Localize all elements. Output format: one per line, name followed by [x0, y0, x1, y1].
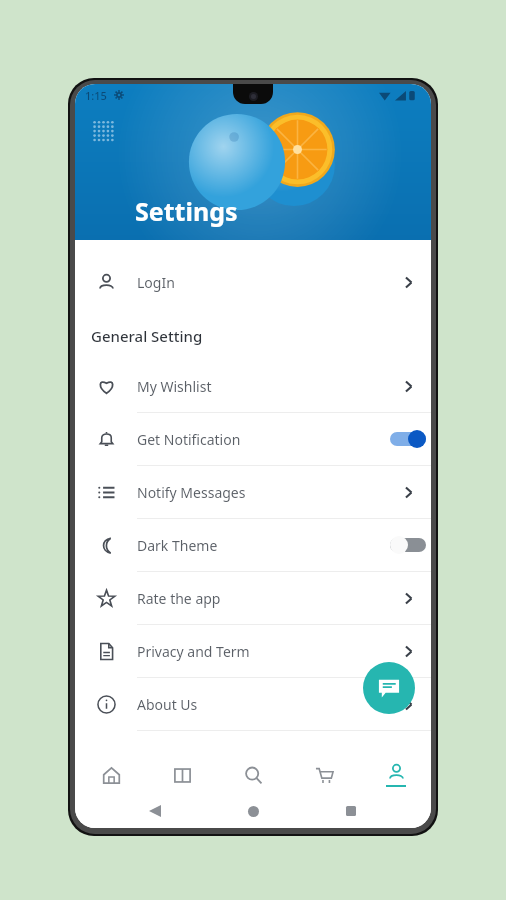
- staticText: 1:15: [85, 88, 107, 103]
- button[interactable]: Profile: [360, 756, 431, 794]
- button[interactable]: Home: [235, 794, 271, 828]
- button[interactable]: Home: [75, 756, 147, 794]
- button[interactable]: About Us: [75, 678, 431, 730]
- button[interactable]: Privacy and Term: [75, 625, 431, 677]
- button[interactable]: Recents: [333, 794, 369, 828]
- button[interactable]: Toggle on: [390, 430, 426, 448]
- button[interactable]: Rate the app: [75, 572, 431, 624]
- button[interactable]: Back: [137, 794, 173, 828]
- button[interactable]: Notify Messages: [75, 466, 431, 518]
- staticText: LogIn: [137, 273, 385, 292]
- button[interactable]: My Wishlist: [75, 360, 431, 412]
- button[interactable]: Get Notification: [75, 413, 431, 465]
- staticText: General Setting: [91, 326, 203, 346]
- staticText: Settings: [135, 194, 238, 228]
- staticText: Dark Theme: [137, 536, 385, 555]
- button[interactable]: Chat support: [363, 662, 415, 714]
- button[interactable]: Search: [218, 756, 289, 794]
- staticText: My Wishlist: [137, 377, 385, 396]
- staticText: Notify Messages: [137, 483, 385, 502]
- staticText: Get Notification: [137, 430, 385, 449]
- button[interactable]: Cart: [289, 756, 360, 794]
- staticText: Privacy and Term: [137, 642, 385, 661]
- staticText: About Us: [137, 695, 385, 714]
- button[interactable]: Toggle off: [390, 536, 426, 554]
- button[interactable]: Dark Theme: [75, 519, 431, 571]
- button[interactable]: Catalog: [147, 756, 218, 794]
- staticText: Rate the app: [137, 589, 385, 608]
- button[interactable]: LogIn: [75, 256, 431, 308]
